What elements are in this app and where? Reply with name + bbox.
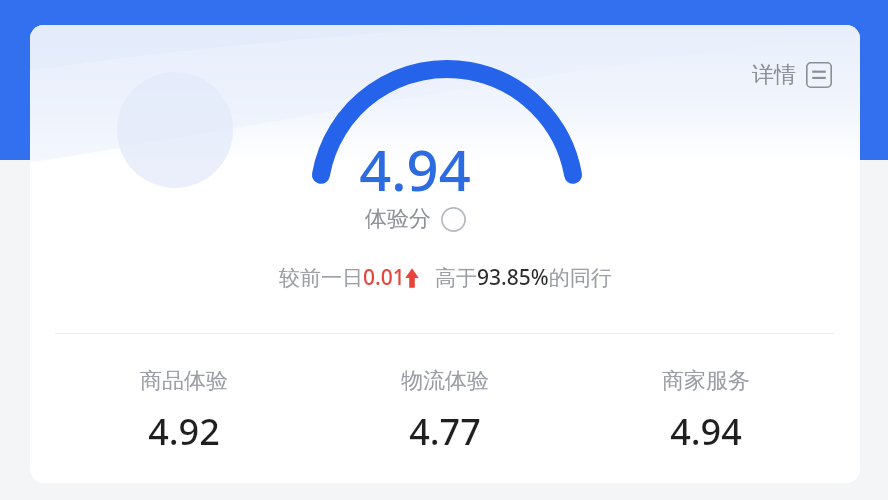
staticText: 物流体验 xyxy=(401,367,489,395)
button[interactable]: 商家服务 xyxy=(575,365,836,458)
staticText: 4.94 xyxy=(670,407,742,456)
staticText: 4.92 xyxy=(148,407,220,456)
staticText: 商品体验 xyxy=(140,367,228,395)
button[interactable]: 物流体验 xyxy=(314,365,575,458)
button[interactable]: 商品体验 xyxy=(54,365,314,458)
staticText: 高于93.85%的同行 xyxy=(435,263,612,292)
other: 帮助说明 xyxy=(441,207,466,232)
button[interactable]: 详情 xyxy=(748,57,836,93)
staticText: 详情 xyxy=(752,61,796,89)
other: 详情列表 xyxy=(806,62,832,88)
button[interactable]: 体验分 xyxy=(365,205,466,233)
staticText: 体验分 xyxy=(365,205,431,233)
staticText: 4.94 xyxy=(359,131,471,207)
staticText: 4.77 xyxy=(409,407,481,456)
staticText: 较前一日0.01 xyxy=(279,263,405,292)
staticText: 商家服务 xyxy=(662,367,750,395)
